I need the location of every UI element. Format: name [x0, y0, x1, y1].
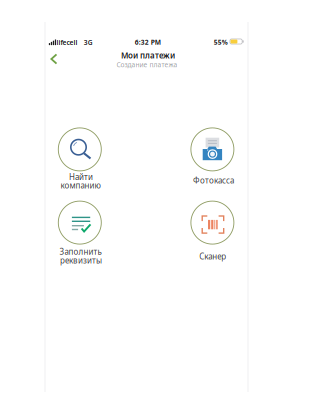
staticText: компанию: [60, 180, 100, 191]
staticText: Сканер: [199, 251, 226, 262]
button[interactable]: Заполнить реквизиты: [58, 201, 101, 244]
staticText: 6:32 PM: [135, 38, 161, 47]
staticText: Мои платежи: [121, 50, 175, 61]
staticText: Заполнить: [59, 246, 101, 257]
staticText: 55%: [214, 38, 228, 47]
button[interactable]: Сканер: [191, 201, 234, 244]
staticText: 3G: [84, 38, 93, 47]
staticText: реквизиты: [60, 255, 102, 266]
button[interactable]: Back: [44, 48, 63, 70]
staticText: Фотокасса: [193, 175, 234, 186]
button[interactable]: Фотокасса: [191, 128, 234, 171]
staticText: Создание платежа: [116, 60, 177, 69]
staticText: Найти: [69, 172, 93, 182]
button[interactable]: Найти компанию: [58, 128, 101, 171]
staticText: lifecell: [56, 38, 77, 47]
